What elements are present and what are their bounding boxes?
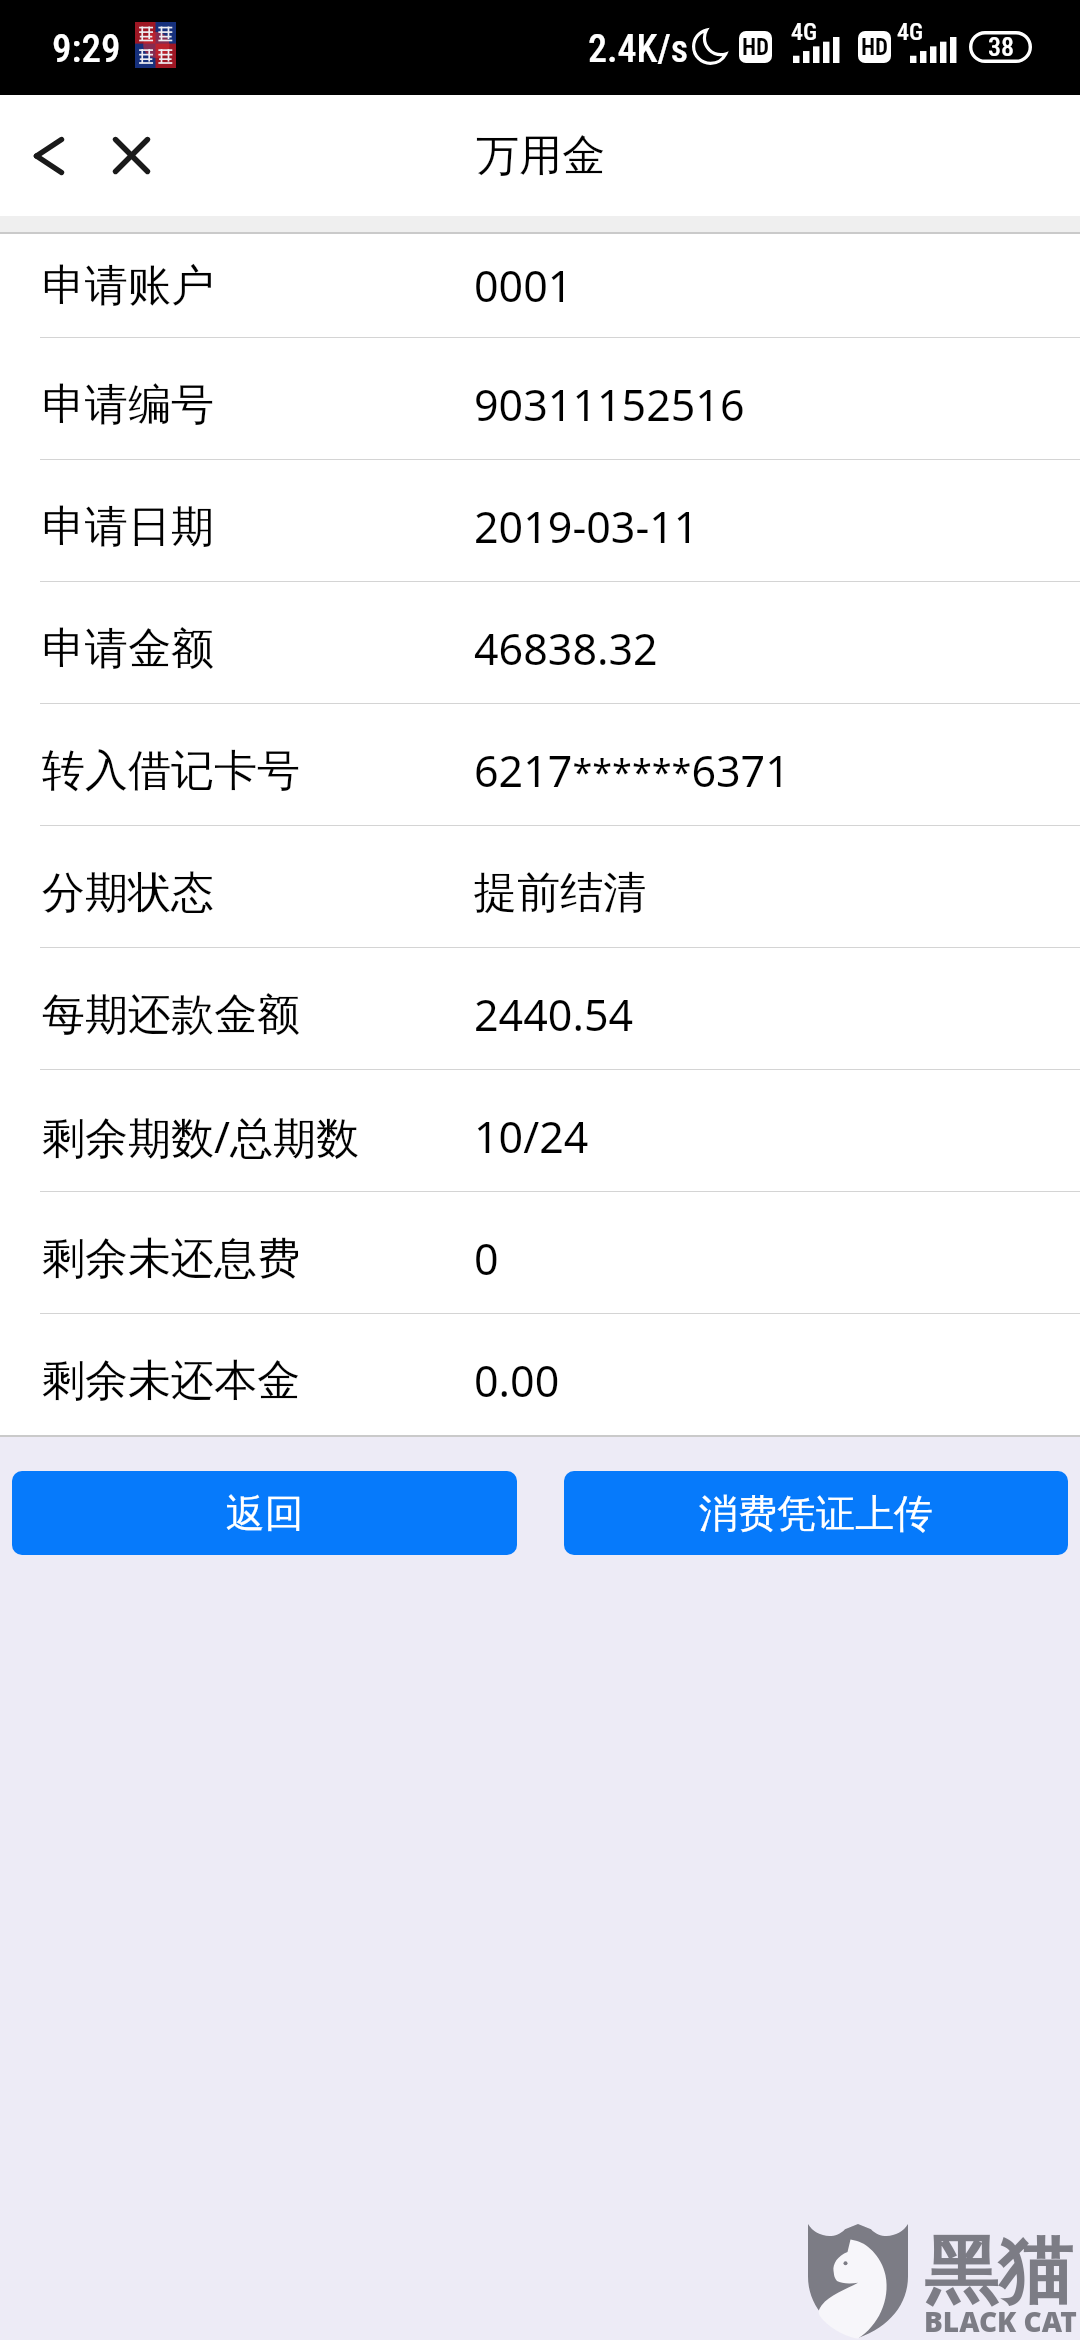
staticText: 2440.54 bbox=[474, 985, 634, 1044]
button[interactable]: 返回 bbox=[12, 1471, 517, 1555]
staticText: 黑猫 bbox=[924, 2225, 1072, 2318]
staticText: HD bbox=[861, 34, 889, 61]
staticText: 提前结清 bbox=[474, 866, 646, 920]
staticText: 申请金额 bbox=[42, 622, 214, 676]
staticText: 4G bbox=[897, 18, 924, 46]
button[interactable]: 分期状态 bbox=[0, 826, 1080, 947]
staticText: 9:29 bbox=[52, 26, 121, 72]
staticText: 消费凭证上传 bbox=[699, 1489, 933, 1538]
button[interactable]: 申请编号 bbox=[0, 338, 1080, 459]
staticText: 2019-03-11 bbox=[474, 497, 699, 556]
button[interactable]: 申请金额 bbox=[0, 582, 1080, 703]
button[interactable]: 申请日期 bbox=[0, 460, 1080, 581]
staticText: 申请编号 bbox=[42, 378, 214, 432]
staticText: 0 bbox=[474, 1229, 499, 1288]
button[interactable]: 剩余未还本金 bbox=[0, 1314, 1080, 1435]
staticText: 38 bbox=[988, 32, 1014, 62]
staticText: 返回 bbox=[226, 1489, 304, 1538]
staticText: BLACK CAT bbox=[924, 2302, 1077, 2340]
staticText: 90311152516 bbox=[474, 375, 745, 434]
staticText: 剩余未还本金 bbox=[42, 1354, 300, 1408]
staticText: 2.4K/s bbox=[588, 27, 689, 72]
button[interactable]: 剩余期数/总期数 bbox=[0, 1070, 1080, 1191]
staticText: 申请账户 bbox=[42, 259, 214, 313]
staticText: 转入借记卡号 bbox=[42, 744, 300, 798]
button[interactable]: Close bbox=[93, 95, 169, 216]
staticText: 剩余期数/总期数 bbox=[42, 1107, 359, 1166]
staticText: 0001 bbox=[474, 256, 573, 315]
staticText: 万用金 bbox=[476, 129, 605, 183]
staticText: 申请日期 bbox=[42, 500, 214, 554]
staticText: 6217******6371 bbox=[474, 741, 790, 800]
staticText: 4G bbox=[791, 18, 818, 46]
staticText: 46838.32 bbox=[474, 619, 658, 678]
button[interactable]: Back bbox=[5, 95, 93, 216]
staticText: HD bbox=[742, 34, 770, 61]
button[interactable]: 申请账户 bbox=[0, 234, 1080, 337]
button[interactable]: 消费凭证上传 bbox=[564, 1471, 1068, 1555]
button[interactable]: 剩余未还息费 bbox=[0, 1192, 1080, 1313]
staticText: 剩余未还息费 bbox=[42, 1232, 300, 1286]
button[interactable]: 每期还款金额 bbox=[0, 948, 1080, 1069]
staticText: 10/24 bbox=[474, 1107, 589, 1166]
staticText: 每期还款金额 bbox=[42, 988, 300, 1042]
staticText: 分期状态 bbox=[42, 866, 214, 920]
staticText: 0.00 bbox=[474, 1351, 560, 1410]
button[interactable]: 转入借记卡号 bbox=[0, 704, 1080, 825]
